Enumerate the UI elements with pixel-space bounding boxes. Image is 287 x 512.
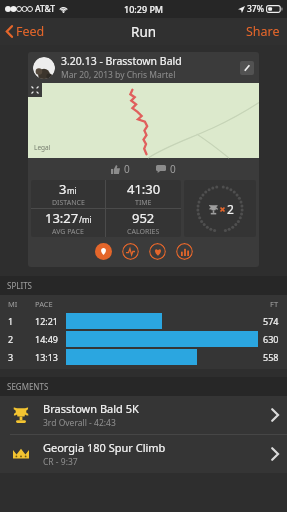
staticText: /mi bbox=[79, 214, 92, 225]
staticText: AT&T bbox=[35, 3, 56, 15]
staticText: 574 bbox=[263, 315, 279, 327]
staticText: 12:21 bbox=[35, 315, 66, 327]
staticText: AVG PACE bbox=[52, 227, 84, 237]
button[interactable]: Feed bbox=[0, 19, 51, 44]
staticText: mi bbox=[67, 185, 77, 196]
staticText: 2 bbox=[8, 333, 35, 345]
staticText: 41:30 bbox=[127, 180, 161, 198]
staticText: SPLITS bbox=[7, 280, 32, 291]
button[interactable]: Map bbox=[95, 243, 112, 260]
staticText: 1 bbox=[8, 315, 35, 327]
button[interactable]: Charts bbox=[176, 243, 193, 260]
button[interactable]: Edit activity bbox=[240, 61, 254, 75]
staticText: Mar 20, 2013 by Chris Martel bbox=[61, 69, 176, 81]
button[interactable]: Brasstown Bald 5K bbox=[0, 396, 287, 434]
staticText: TIME bbox=[135, 198, 152, 208]
button[interactable]: 1 bbox=[0, 312, 287, 330]
button[interactable]: Heart rate bbox=[149, 243, 166, 260]
button[interactable]: Pace analysis bbox=[122, 243, 139, 260]
staticText: 13:27 bbox=[45, 209, 79, 227]
staticText: SEGMENTS bbox=[7, 381, 49, 392]
button[interactable]: 3 bbox=[0, 348, 287, 366]
staticText: 0 bbox=[124, 162, 130, 176]
staticText: 13:13 bbox=[35, 351, 66, 363]
staticText: 952 bbox=[132, 209, 155, 227]
staticText: 3 bbox=[8, 351, 35, 363]
staticText: 37% bbox=[247, 3, 264, 15]
button[interactable]: 0 bbox=[107, 159, 134, 179]
staticText: Legal bbox=[34, 143, 51, 152]
staticText: 630 bbox=[263, 333, 279, 345]
staticText: 558 bbox=[263, 351, 279, 363]
button[interactable]: 2 bbox=[0, 330, 287, 348]
staticText: Brasstown Bald 5K bbox=[43, 401, 139, 416]
staticText: CR - 9:37 bbox=[43, 456, 78, 468]
staticText: 3 bbox=[59, 180, 67, 198]
button[interactable]: Achievements: 2 trophies bbox=[184, 180, 256, 237]
staticText: 2 bbox=[227, 201, 234, 217]
button[interactable]: Expand map bbox=[28, 83, 42, 97]
staticText: PACE bbox=[35, 299, 270, 309]
staticText: Run bbox=[131, 23, 157, 41]
staticText: 14:49 bbox=[35, 333, 66, 345]
staticText: DISTANCE bbox=[52, 198, 85, 208]
staticText: MI bbox=[8, 299, 35, 309]
staticText: 10:29 PM bbox=[124, 3, 164, 15]
staticText: 3rd Overall - 42:43 bbox=[43, 417, 116, 429]
staticText: Georgia 180 Spur Climb bbox=[43, 440, 166, 455]
staticText: 3.20.13 - Brasstown Bald bbox=[61, 54, 182, 68]
button[interactable]: Georgia 180 Spur Climb bbox=[0, 435, 287, 473]
staticText: 0 bbox=[170, 162, 176, 176]
staticText: FT bbox=[270, 299, 279, 309]
button[interactable]: 0 bbox=[152, 159, 180, 179]
staticText: Feed bbox=[16, 23, 45, 40]
staticText: CALORIES bbox=[127, 227, 160, 237]
button[interactable]: Share bbox=[239, 18, 287, 45]
